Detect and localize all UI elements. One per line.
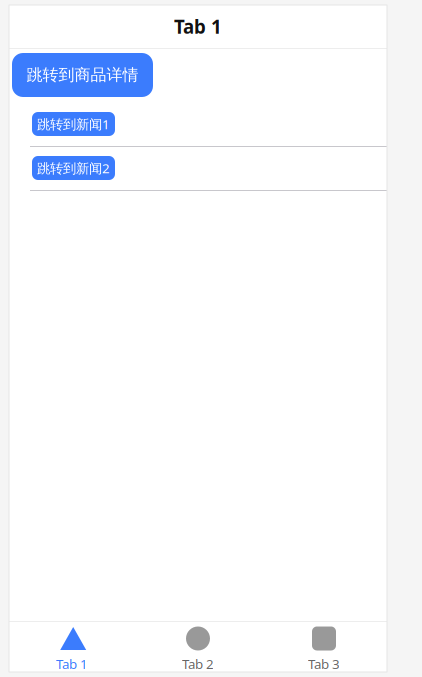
staticText: 跳转到新闻1 [37,115,110,133]
staticText: 跳转到新闻2 [37,159,110,177]
button[interactable]: 跳转到新闻2 [32,156,115,180]
staticText: Tab 2 [182,655,214,673]
staticText: Tab 1 [174,14,222,39]
button[interactable]: 跳转到新闻1 [32,112,115,136]
button[interactable]: Tab 1 [9,622,135,672]
staticText: Tab 1 [56,655,88,673]
button[interactable]: Tab 2 [135,622,261,672]
staticText: 跳转到商品详情 [26,65,138,85]
button[interactable]: 跳转到商品详情 [12,53,153,97]
staticText: Tab 3 [308,655,340,673]
button[interactable]: Tab 3 [261,622,387,672]
